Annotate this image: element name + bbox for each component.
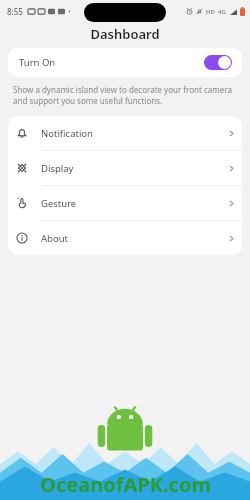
button[interactable]: Turn On [8, 48, 242, 77]
staticText: Show a dynamic island view to decorate y… [13, 84, 237, 106]
staticText: Turn On [19, 56, 56, 69]
staticText: Display [41, 162, 74, 175]
button[interactable]: Notification [8, 116, 242, 150]
button[interactable]: Gesture [8, 186, 242, 220]
staticText: HD [206, 8, 215, 16]
staticText: OceanofAPK.com [40, 471, 211, 498]
staticText: About [41, 232, 68, 245]
staticText: Dashboard [90, 25, 160, 43]
staticText: Notification [41, 127, 93, 140]
button[interactable]: About [8, 221, 242, 255]
staticText: Gesture [41, 197, 77, 210]
button[interactable]: Display [8, 151, 242, 185]
staticText: 8:55 [7, 6, 23, 17]
staticText: 4G [218, 8, 226, 16]
button[interactable]: Turn On toggle [204, 55, 232, 70]
